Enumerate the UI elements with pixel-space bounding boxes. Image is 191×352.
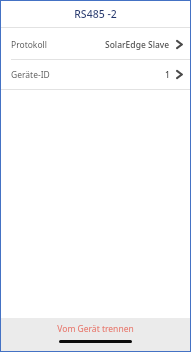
other: Home [59,340,132,343]
staticText: Protokoll [11,39,47,51]
staticText: Vom Gerät trennen [57,323,134,335]
button[interactable]: Protokoll [0,30,191,59]
staticText: 1 [165,69,170,81]
staticText: Geräte-ID [11,69,50,81]
staticText: RS485 -2 [74,7,117,21]
staticText: SolarEdge Slave [105,39,170,51]
button[interactable]: Geräte-ID [0,60,191,89]
button[interactable]: Vom Gerät trennen [0,318,191,340]
